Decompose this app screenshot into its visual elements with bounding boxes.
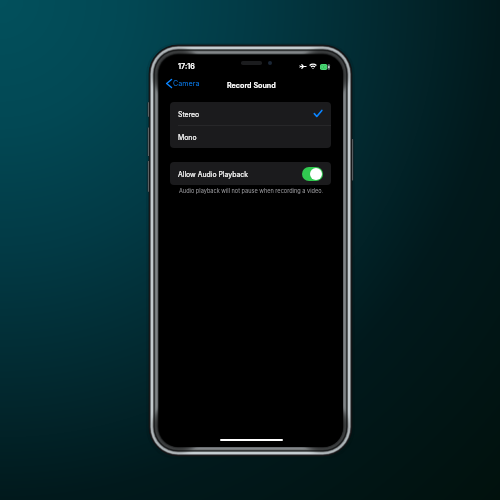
button[interactable]: Mono (170, 126, 331, 148)
staticText: Allow Audio Playback (178, 170, 249, 178)
staticText: 17:16 (178, 62, 195, 71)
staticText: Record Sound (227, 81, 276, 90)
button[interactable]: Stereo (170, 102, 331, 125)
staticText: Stereo (178, 110, 200, 118)
other: Airplane mode (300, 64, 307, 69)
other: Wi-Fi (310, 64, 316, 69)
button[interactable]: Allow Audio Playback (170, 162, 331, 185)
staticText: Camera (173, 79, 200, 88)
staticText: Audio playback will not pause when recor… (179, 188, 324, 195)
other: Battery (320, 64, 330, 70)
staticText: Mono (178, 133, 197, 141)
button[interactable]: Allow Audio Playback toggle (302, 167, 323, 181)
button[interactable]: Camera (162, 77, 204, 90)
